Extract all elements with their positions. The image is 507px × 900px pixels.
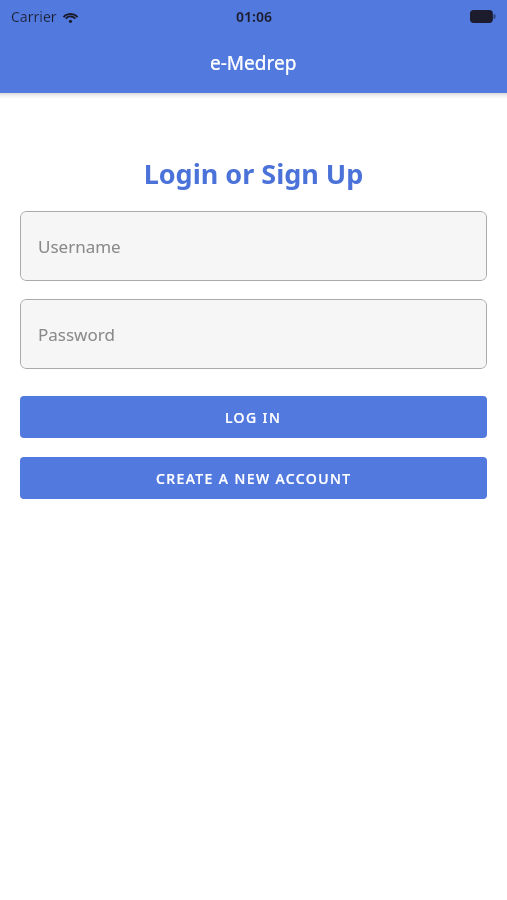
staticText: Username [38, 235, 121, 258]
staticText: CREATE A NEW ACCOUNT [156, 469, 352, 488]
staticText: 01:06 [236, 7, 272, 26]
staticText: LOG IN [225, 408, 282, 427]
button[interactable]: LOG IN [20, 396, 487, 438]
staticText: e-Medrep [210, 50, 297, 76]
staticText: Carrier [11, 7, 57, 26]
button[interactable]: Password [20, 299, 487, 369]
staticText: Login or Sign Up [0, 155, 507, 192]
staticText: Password [38, 323, 115, 346]
button[interactable]: CREATE A NEW ACCOUNT [20, 457, 487, 499]
button[interactable]: Username [20, 211, 487, 281]
